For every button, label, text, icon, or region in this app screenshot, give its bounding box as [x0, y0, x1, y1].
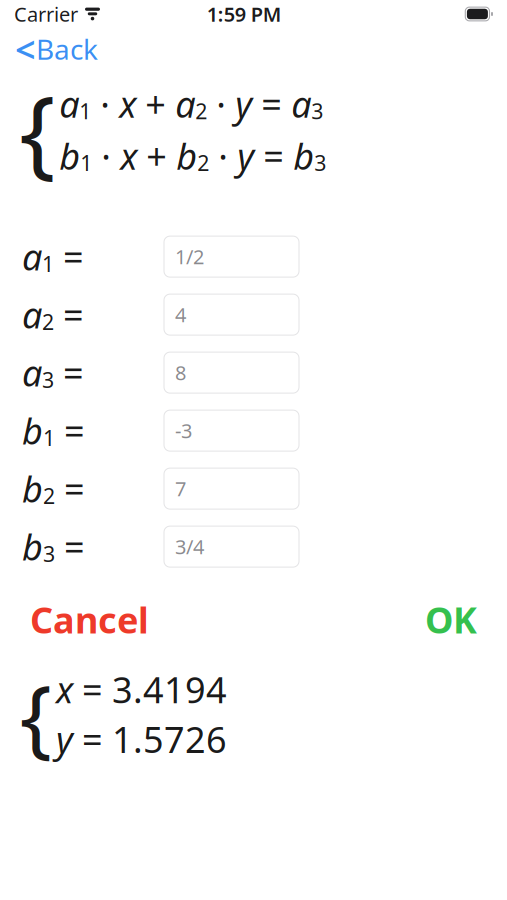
staticText: { — [19, 66, 55, 194]
staticText: 1 — [43, 423, 55, 452]
staticText: -3 — [175, 417, 192, 444]
staticText: 1/2 — [175, 243, 204, 270]
staticText: { — [19, 658, 51, 771]
staticText: b — [59, 132, 80, 180]
staticText: b — [22, 465, 43, 512]
staticText: Carrier — [14, 1, 78, 27]
staticText: 2 — [42, 307, 54, 336]
staticText: OK — [425, 596, 477, 643]
staticText: = — [54, 349, 84, 396]
staticText: 2 — [195, 97, 207, 125]
button[interactable]: OK — [417, 590, 485, 649]
staticText: · — [91, 80, 119, 128]
staticText: a — [22, 349, 42, 396]
staticText: 1 — [80, 149, 92, 177]
staticText: a — [59, 80, 79, 128]
button[interactable]: Cancel — [22, 590, 157, 649]
staticText: b — [22, 523, 43, 570]
staticText: 1:59 PM — [207, 1, 282, 27]
staticText: 2 — [197, 149, 209, 177]
button[interactable]: b2 value — [164, 468, 299, 509]
staticText: x — [120, 132, 137, 180]
staticText: = — [252, 80, 291, 128]
staticText: · — [207, 80, 235, 128]
staticText: 1 — [42, 249, 54, 278]
staticText: 4 — [175, 301, 186, 328]
staticText: b — [22, 407, 43, 454]
staticText: b — [293, 132, 314, 180]
staticText: a — [22, 233, 42, 280]
staticText: a — [291, 80, 311, 128]
button[interactable]: a3 value — [164, 352, 299, 393]
staticText: = — [54, 291, 84, 338]
staticText: y — [56, 715, 73, 763]
staticText: Cancel — [30, 596, 149, 643]
button[interactable]: a2 value — [164, 294, 299, 335]
staticText: · — [209, 132, 237, 180]
staticText: 1 — [79, 97, 91, 125]
staticText: Back — [36, 30, 98, 68]
staticText: 3/4 — [175, 533, 204, 560]
staticText: = — [73, 665, 112, 713]
staticText: < — [15, 25, 36, 73]
staticText: + — [137, 132, 176, 180]
staticText: = — [54, 233, 84, 280]
staticText: = — [55, 407, 85, 454]
staticText: 1.5726 — [112, 715, 227, 763]
staticText: x — [119, 80, 136, 128]
staticText: = — [55, 523, 85, 570]
staticText: = — [254, 132, 293, 180]
staticText: = — [73, 715, 112, 763]
staticText: x — [56, 665, 73, 713]
staticText: 3.4194 — [112, 665, 227, 713]
staticText: a — [175, 80, 195, 128]
staticText: y — [235, 80, 252, 128]
staticText: 3 — [314, 149, 326, 177]
staticText: 7 — [175, 475, 186, 502]
button[interactable]: a1 value — [164, 236, 299, 277]
staticText: y — [237, 132, 254, 180]
staticText: 2 — [43, 481, 55, 510]
staticText: 3 — [43, 539, 55, 568]
button[interactable]: b1 value — [164, 410, 299, 451]
button[interactable]: b3 value — [164, 526, 299, 567]
staticText: a — [22, 291, 42, 338]
staticText: 8 — [175, 359, 186, 386]
staticText: + — [136, 80, 175, 128]
button[interactable]: < — [6, 28, 110, 70]
staticText: · — [92, 132, 120, 180]
staticText: 3 — [42, 365, 54, 394]
staticText: 3 — [311, 97, 323, 125]
staticText: = — [55, 465, 85, 512]
staticText: b — [176, 132, 197, 180]
